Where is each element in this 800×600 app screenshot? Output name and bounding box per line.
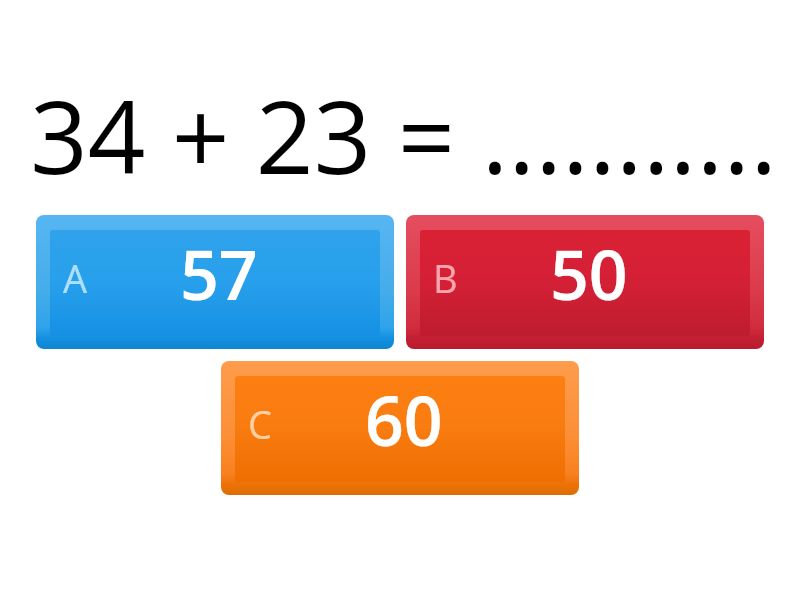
staticText: C xyxy=(248,398,272,450)
button[interactable]: Answer B: 50 xyxy=(406,215,764,349)
button[interactable]: Answer C: 60 xyxy=(221,361,579,495)
staticText: B xyxy=(433,252,458,304)
button[interactable]: Answer A: 57 xyxy=(36,215,394,349)
staticText: 57 xyxy=(180,227,258,320)
staticText: A xyxy=(63,252,88,304)
staticText: 34 + 23 = ........... xyxy=(30,66,778,204)
other: Quiz question xyxy=(0,0,800,600)
staticText: 60 xyxy=(365,373,443,466)
staticText: 50 xyxy=(550,227,628,320)
